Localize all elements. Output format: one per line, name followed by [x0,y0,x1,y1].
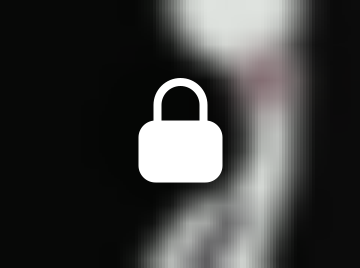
button[interactable]: Locked [0,0,360,268]
